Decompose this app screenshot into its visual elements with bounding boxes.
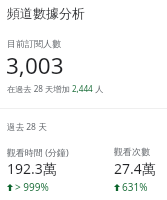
staticText: > 999% bbox=[15, 180, 49, 194]
staticText: 27.4萬 bbox=[114, 159, 156, 178]
staticText: 過去 28 天 bbox=[7, 121, 47, 133]
other: Trending up bbox=[114, 184, 120, 191]
staticText: 頻道數據分析 bbox=[7, 5, 85, 21]
button[interactable]: 觀看次數 bbox=[114, 145, 167, 195]
staticText: 觀看次數 bbox=[114, 146, 150, 157]
button[interactable]: 觀看時間 (分鐘) bbox=[7, 145, 60, 195]
staticText: 631% bbox=[122, 180, 148, 194]
staticText: 觀看時間 (分鐘) bbox=[7, 146, 69, 158]
staticText: 目前訂閱人數 bbox=[7, 38, 61, 49]
button[interactable]: 目前訂閱人數 bbox=[0, 32, 167, 100]
other: Trending up bbox=[7, 184, 13, 191]
staticText: 192.3萬 bbox=[7, 159, 57, 178]
staticText: 在過去 28 天增加 2,444 人 bbox=[7, 83, 104, 94]
button[interactable]: 頻道數據分析 bbox=[0, 0, 167, 28]
staticText: 3,003 bbox=[6, 50, 64, 81]
